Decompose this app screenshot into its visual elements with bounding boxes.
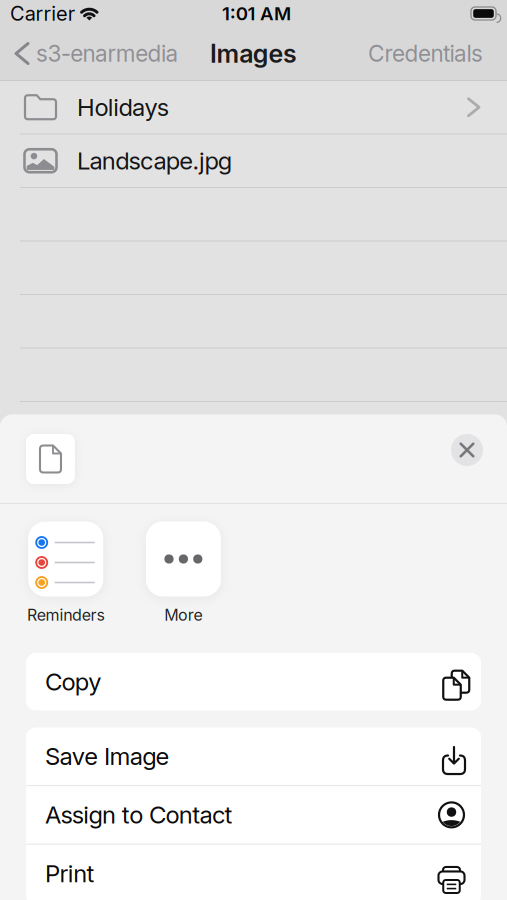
button[interactable]: Landscape.jpg — [0, 134, 507, 188]
staticText: Copy — [45, 667, 101, 696]
button[interactable]: Holidays — [0, 81, 507, 134]
staticText: Images — [210, 39, 297, 68]
staticText: Holidays — [77, 93, 169, 121]
button[interactable]: Copy — [26, 653, 481, 710]
staticText: Credentials — [368, 40, 483, 67]
button[interactable]: Assign to Contact — [26, 786, 481, 844]
button[interactable]: s3-enarmedia — [0, 40, 178, 67]
staticText: s3-enarmedia — [36, 40, 178, 67]
staticText: Carrier — [10, 2, 75, 25]
staticText: Assign to Contact — [45, 801, 232, 829]
button[interactable]: Reminders — [27, 521, 104, 624]
staticText: 1:01 AM — [222, 2, 291, 24]
staticText: Reminders — [27, 605, 104, 624]
staticText: Print — [45, 859, 95, 888]
button[interactable] — [451, 434, 483, 466]
staticText: Landscape.jpg — [77, 147, 232, 175]
button[interactable]: Print — [26, 845, 481, 900]
staticText: Save Image — [45, 742, 170, 770]
button[interactable]: Credentials — [368, 40, 507, 67]
button[interactable]: More — [146, 521, 221, 624]
button[interactable]: Save Image — [26, 727, 481, 785]
staticText: More — [164, 605, 203, 624]
